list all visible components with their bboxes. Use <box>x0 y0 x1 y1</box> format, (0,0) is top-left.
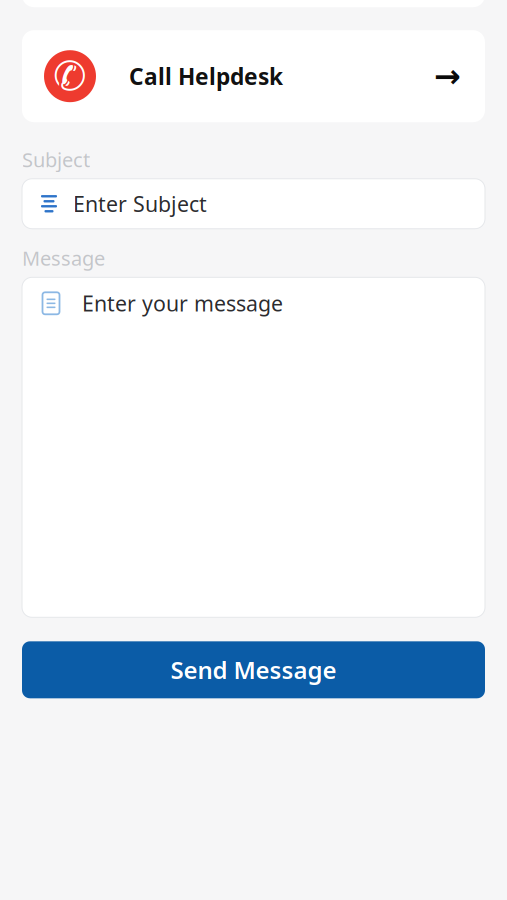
staticText: → <box>434 58 461 94</box>
staticText: ✆ <box>53 53 87 99</box>
staticText: Enter your message <box>82 289 283 317</box>
staticText: Enter Subject <box>73 190 207 218</box>
staticText: Send Message <box>170 654 336 686</box>
staticText: Message <box>22 245 105 271</box>
button[interactable]: ✆ <box>22 30 485 122</box>
staticText: Subject <box>22 146 90 173</box>
button[interactable]: Send Message <box>22 641 485 698</box>
button[interactable]: Enter your message <box>22 277 485 617</box>
button[interactable]: Enter Subject <box>22 179 485 229</box>
staticText: Call Helpdesk <box>129 61 283 91</box>
